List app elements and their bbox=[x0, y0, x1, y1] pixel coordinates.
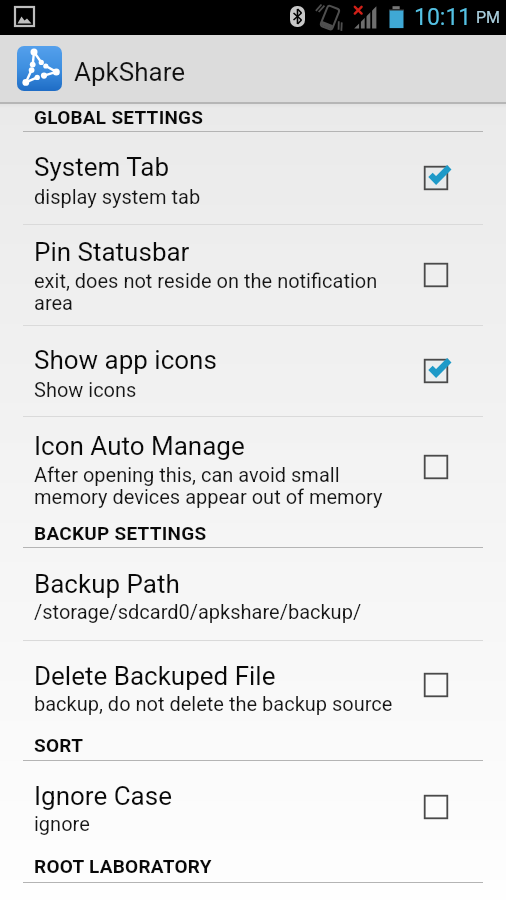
button[interactable] bbox=[0, 761, 506, 845]
staticText: Ignore Case bbox=[34, 781, 172, 811]
button[interactable] bbox=[0, 326, 506, 416]
button[interactable]: Pin Statusbar bbox=[408, 247, 464, 303]
staticText: Backup Path bbox=[34, 569, 180, 599]
staticText: /storage/sdcard0/apkshare/backup/ bbox=[34, 600, 362, 623]
staticText: BACKUP SETTINGS bbox=[34, 522, 207, 544]
staticText: display system tab bbox=[34, 185, 201, 208]
staticText: exit, does not reside on the notificatio… bbox=[34, 269, 392, 315]
staticText: ROOT LABORATORY bbox=[34, 855, 212, 877]
staticText: Icon Auto Manage bbox=[34, 431, 245, 461]
staticText: 10:11 bbox=[414, 4, 472, 31]
staticText: GLOBAL SETTINGS bbox=[34, 106, 204, 128]
other: Ringer vibrate bbox=[316, 5, 343, 30]
other: Battery full bbox=[389, 6, 406, 29]
staticText: ignore bbox=[34, 812, 90, 835]
button[interactable]: System Tab bbox=[408, 150, 464, 206]
staticText: Show app icons bbox=[34, 345, 217, 375]
button[interactable] bbox=[0, 548, 506, 640]
staticText: Show icons bbox=[34, 378, 137, 401]
button[interactable] bbox=[0, 641, 506, 724]
staticText: PM bbox=[476, 8, 501, 27]
button[interactable] bbox=[0, 417, 506, 513]
other: No mobile signal bbox=[354, 6, 378, 30]
button[interactable]: Icon Auto Manage bbox=[408, 439, 464, 495]
button[interactable] bbox=[0, 132, 506, 224]
button[interactable]: ApkShare bbox=[0, 35, 506, 102]
button[interactable]: Delete Backuped File bbox=[408, 657, 464, 713]
staticText: SORT bbox=[34, 734, 84, 756]
button[interactable] bbox=[0, 225, 506, 325]
other: Screenshot saved bbox=[15, 7, 35, 27]
button[interactable]: Show app icons bbox=[408, 343, 464, 399]
staticText: Pin Statusbar bbox=[34, 237, 190, 267]
staticText: After opening this, can avoid small memo… bbox=[34, 463, 392, 509]
staticText: ApkShare bbox=[74, 57, 185, 87]
staticText: Delete Backuped File bbox=[34, 661, 276, 691]
other: Bluetooth on bbox=[290, 6, 306, 28]
staticText: backup, do not delete the backup source bbox=[34, 692, 393, 715]
staticText: System Tab bbox=[34, 152, 170, 182]
button[interactable]: Ignore Case bbox=[408, 779, 464, 835]
